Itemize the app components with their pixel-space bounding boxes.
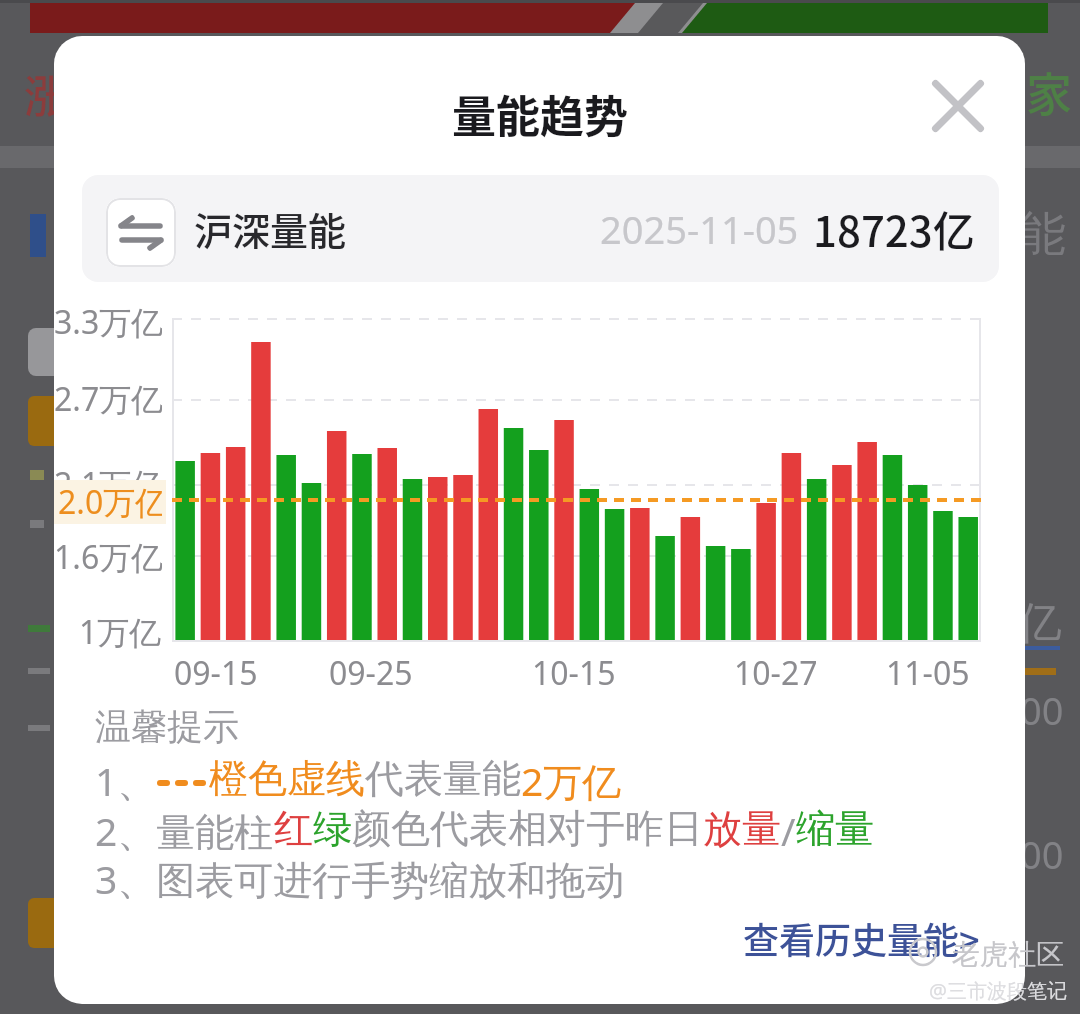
staticText: 00: [1020, 684, 1064, 736]
staticText: @三市波段笔记: [929, 977, 1067, 1004]
staticText: 1、: [95, 754, 157, 802]
staticText: 红: [274, 804, 313, 852]
staticText: 3.3万亿: [54, 300, 162, 344]
staticText: 沪深量能: [194, 201, 347, 256]
staticText: 18723亿: [813, 198, 975, 259]
staticText: 绿: [313, 804, 352, 852]
button[interactable]: 查看历史量能>: [654, 912, 980, 964]
staticText: 橙色虚线: [209, 754, 365, 802]
button[interactable]: 沪深量能: [82, 175, 999, 282]
staticText: 2.0万亿: [58, 480, 162, 524]
staticText: 家: [1026, 58, 1072, 125]
staticText: 00: [1020, 828, 1064, 880]
staticText: 09-15: [174, 651, 258, 695]
staticText: 能: [1018, 204, 1066, 264]
staticText: 11-05: [886, 651, 970, 695]
staticText: 1万亿: [79, 610, 162, 654]
staticText: 颜色代表相对于昨日: [352, 804, 703, 852]
staticText: /: [781, 804, 796, 852]
staticText: 09-25: [329, 651, 413, 695]
staticText: 缩量: [796, 804, 874, 852]
staticText: 2.7万亿: [54, 377, 162, 421]
staticText: 代表量能: [365, 754, 521, 802]
staticText: 温馨提示: [95, 704, 239, 749]
staticText: 老虎社区: [952, 937, 1064, 972]
staticText: 10-15: [532, 651, 616, 695]
staticText: 2.1万亿: [54, 462, 162, 506]
staticText: 2、量能柱: [95, 804, 274, 852]
staticText: 1.6万亿: [54, 535, 162, 579]
staticText: 10-27: [734, 651, 818, 695]
staticText: 3、图表可进行手势缩放和拖动: [95, 852, 625, 900]
staticText: 放量: [703, 804, 781, 852]
button[interactable]: [926, 74, 990, 138]
staticText: 涨: [24, 62, 68, 126]
staticText: 查看历史量能>: [743, 912, 980, 964]
staticText: 2025-11-05: [600, 203, 799, 255]
staticText: 量能趋势: [452, 82, 628, 146]
staticText: 2万亿: [521, 754, 622, 802]
staticText: 亿: [1018, 596, 1062, 651]
